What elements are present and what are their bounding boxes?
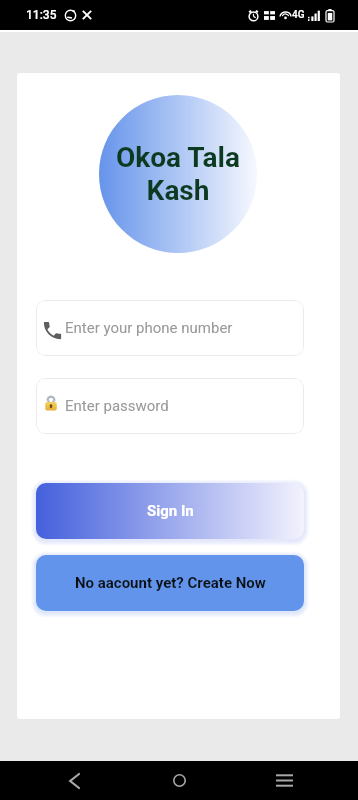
button[interactable]: Sign In xyxy=(36,483,304,539)
button[interactable]: Enter your phone number xyxy=(36,300,304,356)
staticText: Sign In xyxy=(147,502,194,520)
staticText: 11:35 xyxy=(26,8,57,22)
staticText: 4G xyxy=(292,9,305,21)
button[interactable]: No aacount yet? Create Now xyxy=(36,555,304,611)
button[interactable]: Back xyxy=(51,761,97,800)
button[interactable]: Enter password xyxy=(36,378,304,434)
button[interactable]: Recent apps xyxy=(261,761,307,800)
staticText: Enter your phone number xyxy=(65,319,233,337)
button[interactable]: Home xyxy=(156,761,202,800)
staticText: No aacount yet? Create Now xyxy=(75,574,266,592)
staticText: Enter password xyxy=(65,397,169,415)
staticText: Okoa Tala Kash xyxy=(116,141,240,207)
